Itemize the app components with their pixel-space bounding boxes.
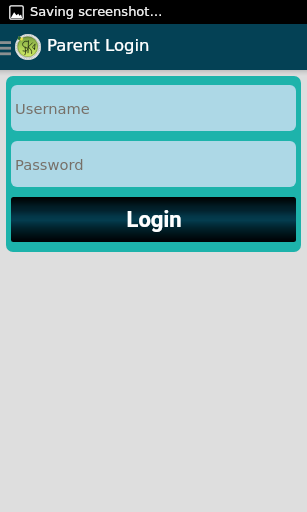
staticText: Parent Login [47,36,150,55]
button[interactable]: Password [11,141,296,187]
button[interactable]: Login [11,197,296,242]
staticText: Saving screenshot… [30,4,163,19]
staticText: Login [126,207,182,233]
staticText: Username [15,100,90,117]
button[interactable]: Username [11,85,296,131]
staticText: Password [15,156,84,173]
button[interactable]: Open navigation menu [0,36,11,58]
